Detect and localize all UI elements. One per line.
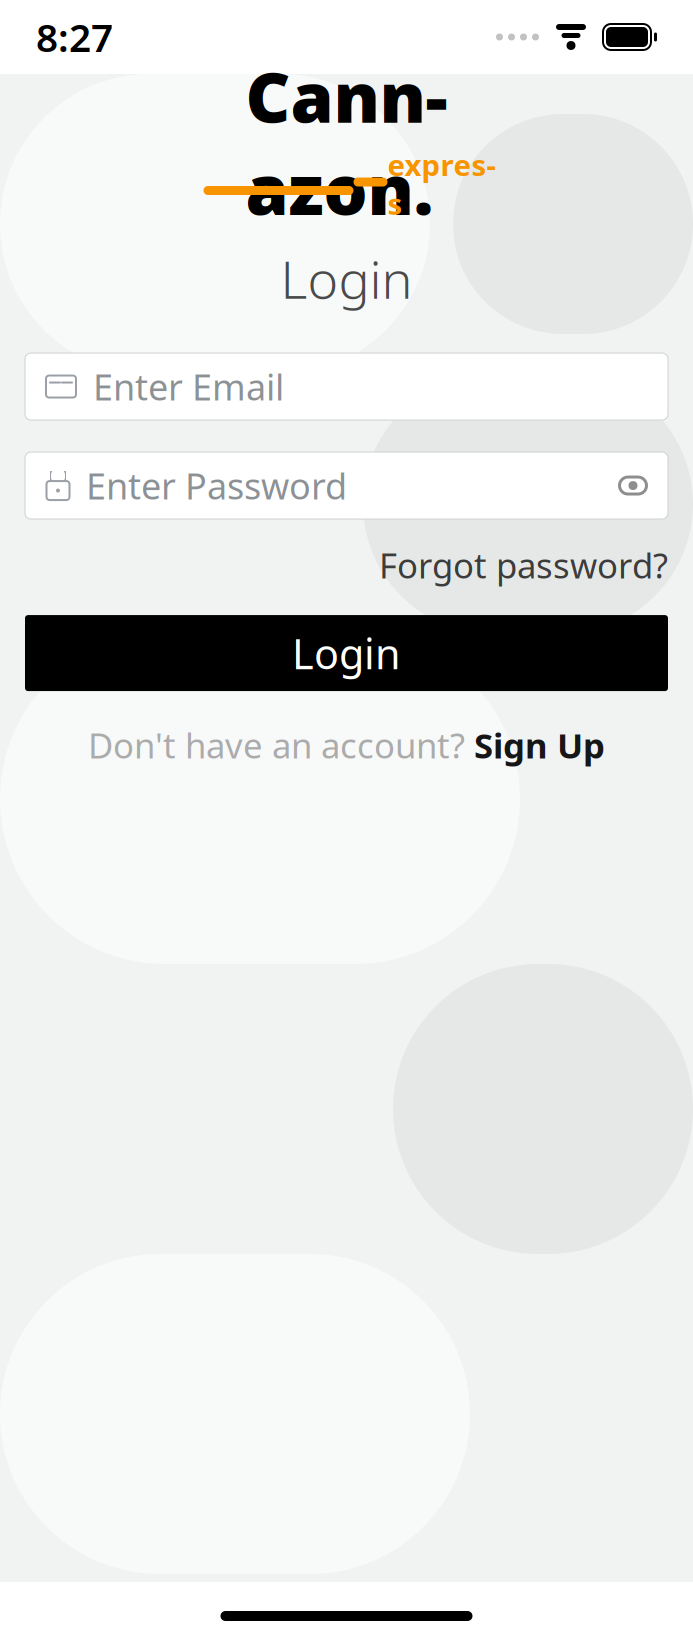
- staticText: Sign Up: [474, 722, 605, 768]
- staticText: Enter Password: [86, 462, 347, 509]
- staticText: Cannazon.: [245, 50, 447, 234]
- staticText: 8:27: [36, 11, 113, 63]
- staticText: Login: [292, 626, 401, 680]
- button[interactable]: Enter Password: [25, 452, 668, 519]
- staticText: Don't have an account?: [88, 722, 465, 768]
- button[interactable]: Enter Email: [25, 353, 668, 420]
- button[interactable]: Forgot password?: [379, 537, 668, 593]
- staticText: Forgot password?: [379, 542, 668, 588]
- button[interactable]: Don't have an account?: [88, 717, 605, 773]
- staticText: Enter Email: [93, 363, 284, 410]
- staticText: Login: [280, 244, 412, 313]
- staticText: express: [387, 145, 495, 223]
- button[interactable]: Login: [25, 615, 668, 691]
